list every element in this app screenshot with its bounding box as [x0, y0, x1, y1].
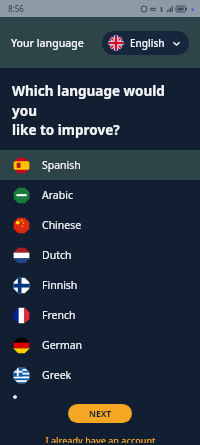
staticText: Spanish: [42, 158, 81, 172]
button[interactable]: Chinese: [0, 210, 200, 240]
button[interactable]: Finnish: [0, 270, 200, 300]
staticText: Arabic: [42, 188, 73, 202]
staticText: Chinese: [42, 218, 82, 232]
button[interactable]: English: [102, 31, 189, 55]
staticText: 8:56: [8, 3, 24, 14]
button[interactable]: I already have an account: [37, 432, 164, 445]
staticText: NEXT: [89, 408, 112, 420]
button[interactable]: Arabic: [0, 180, 200, 210]
button[interactable]: German: [0, 330, 200, 360]
staticText: Your language: [11, 36, 84, 50]
staticText: English: [130, 36, 165, 50]
staticText: Greek: [42, 368, 72, 382]
staticText: Finnish: [42, 278, 78, 292]
button[interactable]: Greek: [0, 360, 200, 390]
staticText: French: [42, 308, 76, 322]
staticText: Which language would you like to improve…: [12, 82, 190, 139]
button[interactable]: Dutch: [0, 240, 200, 270]
staticText: Dutch: [42, 248, 72, 262]
other: Change language: [172, 39, 181, 48]
button[interactable]: Spanish: [0, 150, 200, 180]
button[interactable]: NEXT: [68, 404, 132, 423]
staticText: German: [42, 338, 83, 352]
button[interactable]: French: [0, 300, 200, 330]
